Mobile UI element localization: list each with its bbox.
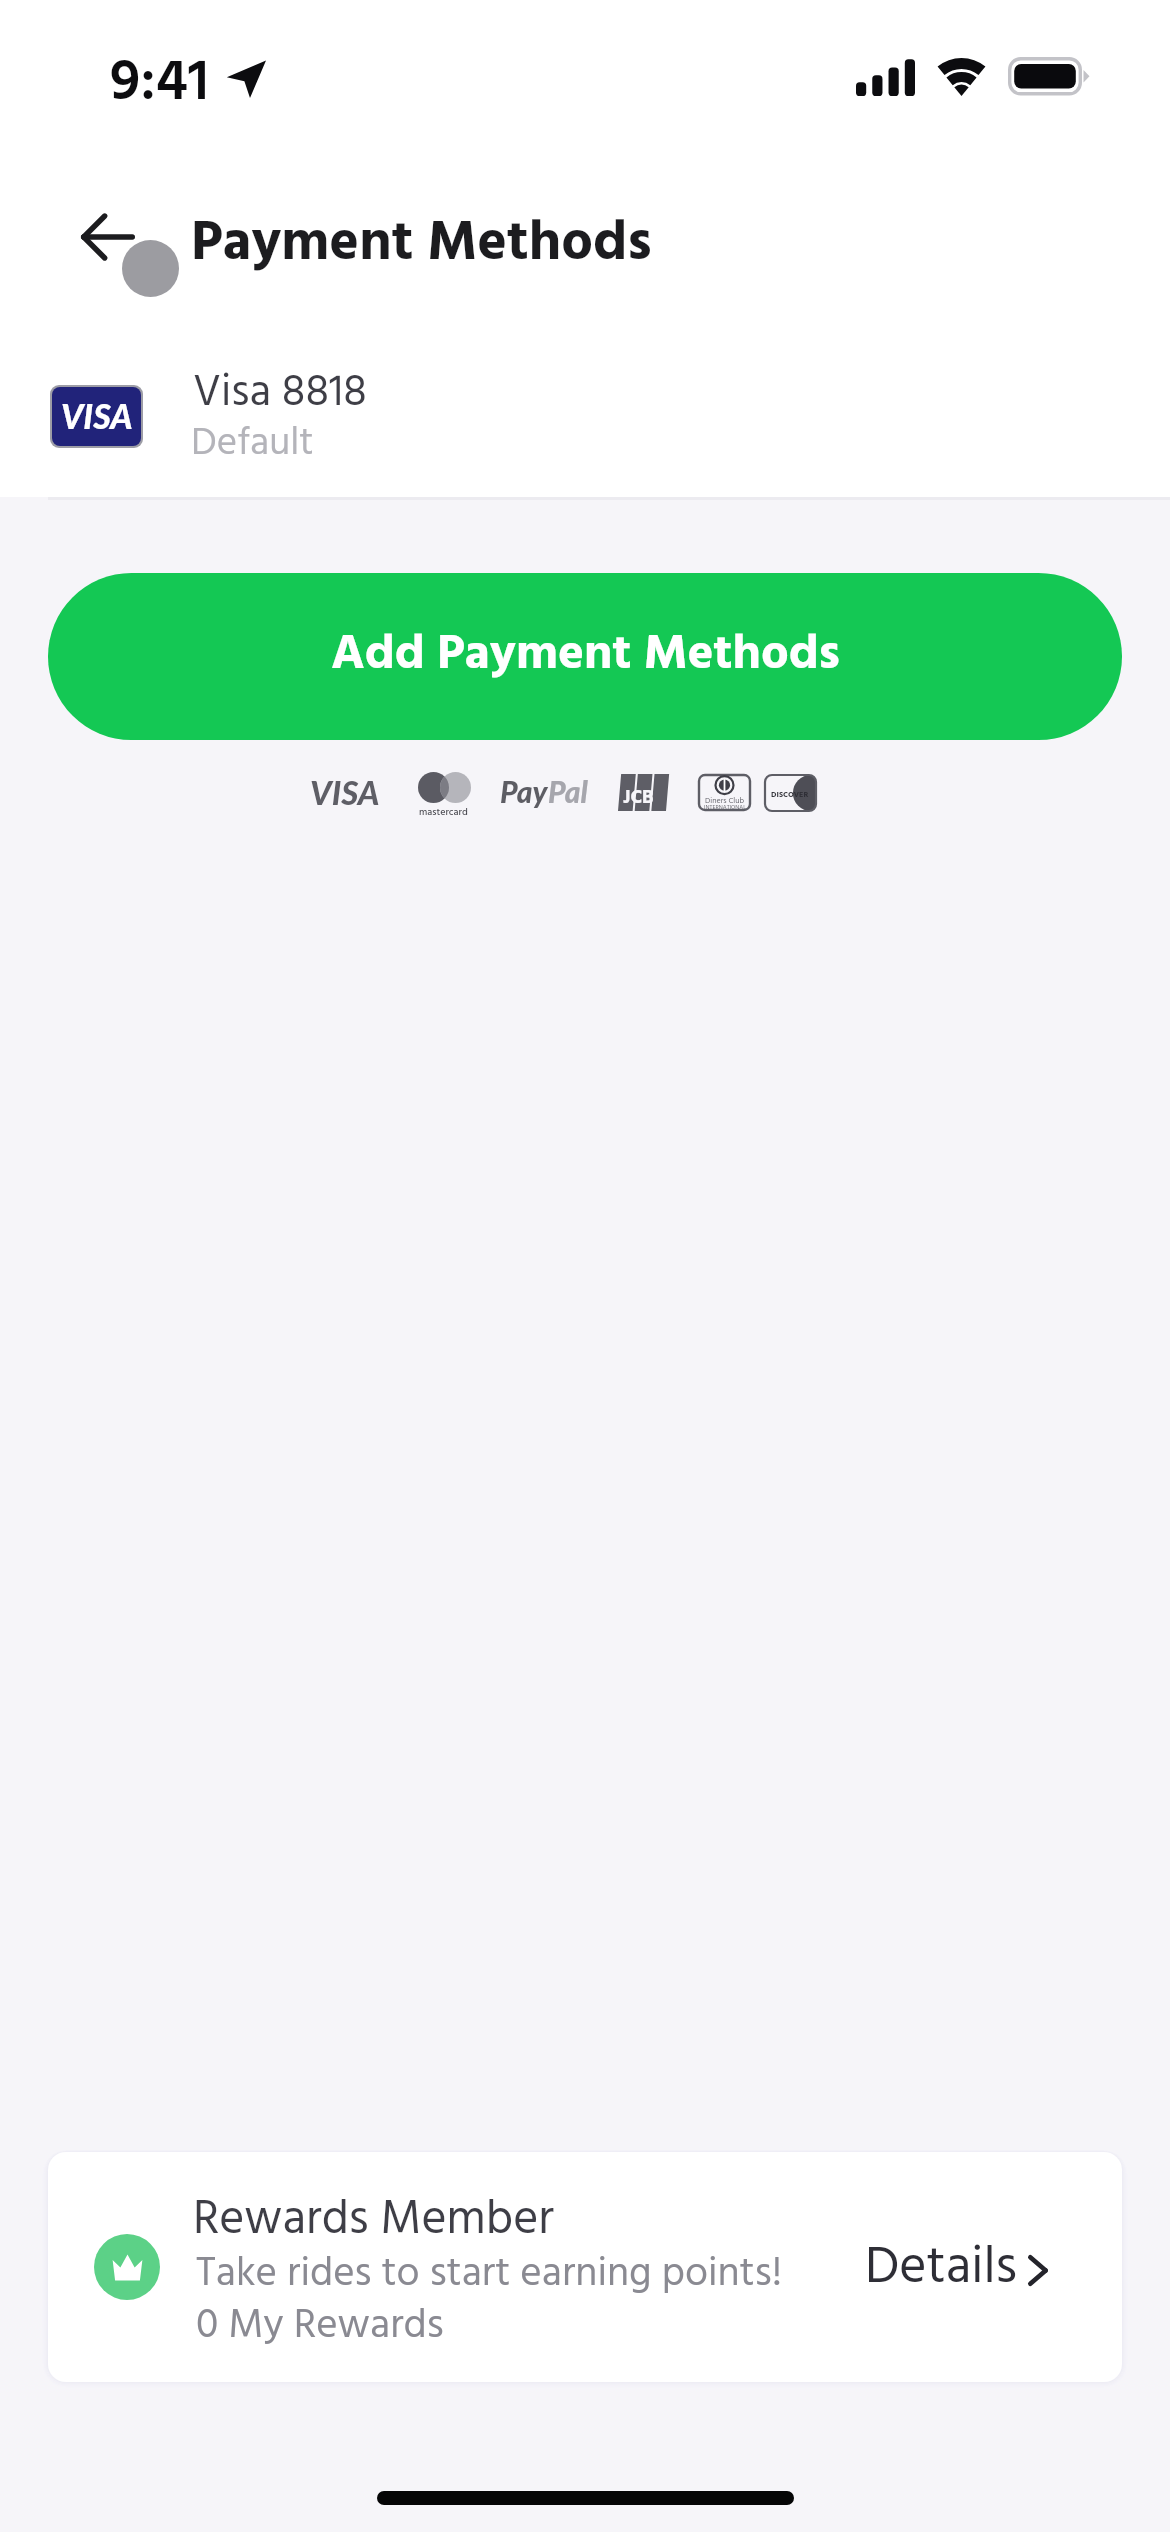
staticText: Pay bbox=[500, 773, 548, 809]
button[interactable]: Rewards Member bbox=[48, 2152, 1122, 2382]
button[interactable]: VISA bbox=[0, 340, 1170, 480]
staticText: Payment Methods bbox=[191, 200, 652, 290]
button[interactable]: Add Payment Methods bbox=[48, 573, 1122, 740]
staticText: INTERNATIONAL bbox=[704, 803, 746, 813]
staticText: Take rides to start earning points! bbox=[196, 2242, 782, 2308]
staticText: VISA bbox=[61, 395, 133, 436]
staticText: 0 My Rewards bbox=[196, 2294, 444, 2360]
staticText: mastercard bbox=[419, 804, 468, 820]
staticText: DISCOVER bbox=[771, 789, 809, 802]
staticText: 9:41 bbox=[110, 38, 209, 131]
staticText: VISA bbox=[310, 772, 380, 812]
staticText: Rewards Member bbox=[193, 2182, 554, 2259]
staticText: Visa 8818 bbox=[193, 359, 367, 429]
staticText: Details bbox=[865, 2227, 1017, 2310]
button[interactable]: Details bbox=[865, 2226, 1048, 2314]
staticText: Add Payment Methods bbox=[331, 616, 840, 694]
staticText: Default bbox=[191, 413, 314, 475]
button[interactable]: Back bbox=[62, 192, 152, 282]
staticText: Pal bbox=[548, 773, 588, 809]
staticText: Diners Club bbox=[705, 795, 745, 808]
staticText: JCB bbox=[623, 783, 654, 813]
